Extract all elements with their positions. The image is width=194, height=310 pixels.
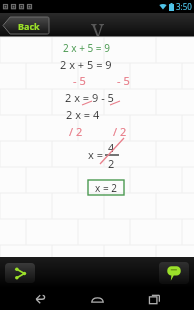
staticText: / 2 xyxy=(113,124,127,139)
staticText: 2 xyxy=(108,156,115,171)
staticText: Back xyxy=(18,20,40,32)
staticText: - 5 xyxy=(117,73,130,88)
staticText: 2 x = 4 xyxy=(66,107,100,122)
staticText: / 2 xyxy=(69,124,83,139)
staticText: 3:50 xyxy=(176,1,192,12)
staticText: - 5 xyxy=(73,73,86,88)
staticText: 2 x = 9 - 5 xyxy=(65,90,114,105)
staticText: x = xyxy=(88,147,103,162)
button[interactable]: x = 2 xyxy=(88,180,124,195)
button[interactable]: Recents xyxy=(137,288,171,310)
button[interactable]: Share xyxy=(5,263,35,283)
button[interactable]: Back xyxy=(3,17,49,34)
staticText: 2 x + 5 = 9 xyxy=(63,41,110,55)
staticText: x = 2 xyxy=(95,181,117,195)
staticText: 2 x + 5 = 9 xyxy=(60,57,112,72)
staticText: y xyxy=(91,12,104,36)
button[interactable]: Back xyxy=(23,288,57,310)
button[interactable]: Help chat xyxy=(159,262,189,284)
staticText: 4 xyxy=(108,140,115,155)
button[interactable]: Home xyxy=(80,288,114,310)
